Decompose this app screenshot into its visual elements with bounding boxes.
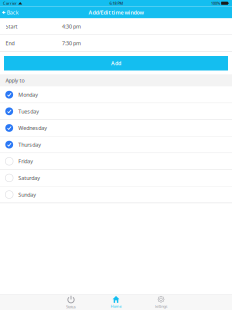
button[interactable]: Sunday (0, 186, 232, 203)
button[interactable]: Monday (0, 87, 232, 103)
button[interactable]: Start (0, 18, 232, 35)
button[interactable]: Friday (0, 153, 232, 169)
staticText: Start (5, 23, 17, 30)
staticText: End (5, 40, 14, 47)
staticText: Sunday (18, 191, 36, 198)
button[interactable]: Settings (138, 296, 183, 309)
staticText: Status (66, 304, 76, 309)
staticText: 4:30 pm (62, 23, 81, 30)
staticText: Tuesday (18, 108, 39, 115)
staticText: 100% (211, 1, 220, 6)
button[interactable]: Tuesday (0, 103, 232, 119)
staticText: Back (7, 9, 19, 16)
staticText: Apply to (5, 77, 24, 84)
staticText: Monday (18, 91, 38, 98)
staticText: Wednesday (18, 124, 47, 131)
button[interactable]: Wednesday (0, 120, 232, 136)
staticText: Add (111, 60, 121, 67)
staticText: Home (110, 303, 121, 309)
staticText: Saturday (18, 174, 40, 181)
staticText: Carrier (3, 1, 17, 6)
button[interactable]: Thursday (0, 137, 232, 153)
staticText: 6:18 PM (110, 1, 124, 6)
button[interactable]: End (0, 35, 232, 51)
staticText: Thursday (18, 141, 41, 148)
staticText: Friday (18, 158, 33, 165)
button[interactable]: Status (48, 296, 93, 309)
staticText: Add/Edit time window (88, 9, 143, 16)
button[interactable]: Add (4, 56, 228, 70)
button[interactable]: Back (0, 6, 22, 18)
button[interactable]: Home (93, 296, 138, 309)
staticText: 7:30 pm (62, 40, 81, 47)
button[interactable]: Saturday (0, 170, 232, 186)
staticText: Settings (154, 303, 167, 309)
